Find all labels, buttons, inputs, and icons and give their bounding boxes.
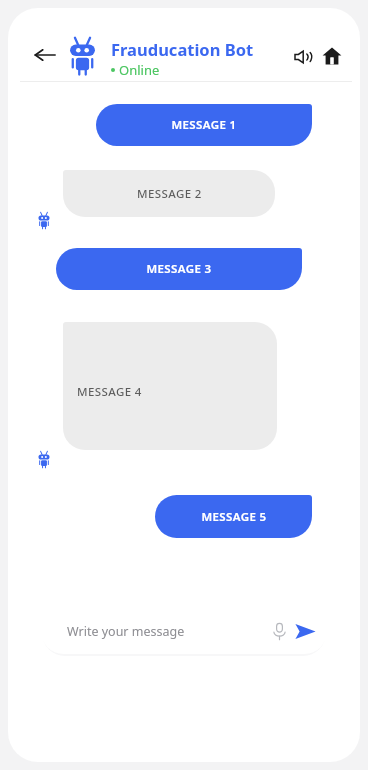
button[interactable]: Back [34,45,56,65]
button[interactable]: MESSAGE 4 [63,322,277,450]
staticText: Write your message [67,623,185,640]
button[interactable]: Voice input [271,622,288,641]
staticText: Frauducation Bot [111,38,254,60]
button[interactable]: Sound [294,48,314,66]
button[interactable]: MESSAGE 3 [56,248,302,290]
staticText: MESSAGE 4 [77,384,142,400]
staticText: MESSAGE 2 [137,186,202,202]
staticText: MESSAGE 5 [201,509,267,525]
staticText: MESSAGE 1 [171,117,237,133]
button[interactable]: Write your message [41,609,327,654]
button[interactable]: Send [295,623,316,640]
button[interactable]: MESSAGE 1 [96,104,312,146]
button[interactable]: MESSAGE 2 [63,170,275,217]
staticText: Online [119,61,160,79]
staticText: MESSAGE 3 [146,261,212,277]
button[interactable]: Home [322,46,342,66]
button[interactable]: MESSAGE 5 [155,495,312,538]
